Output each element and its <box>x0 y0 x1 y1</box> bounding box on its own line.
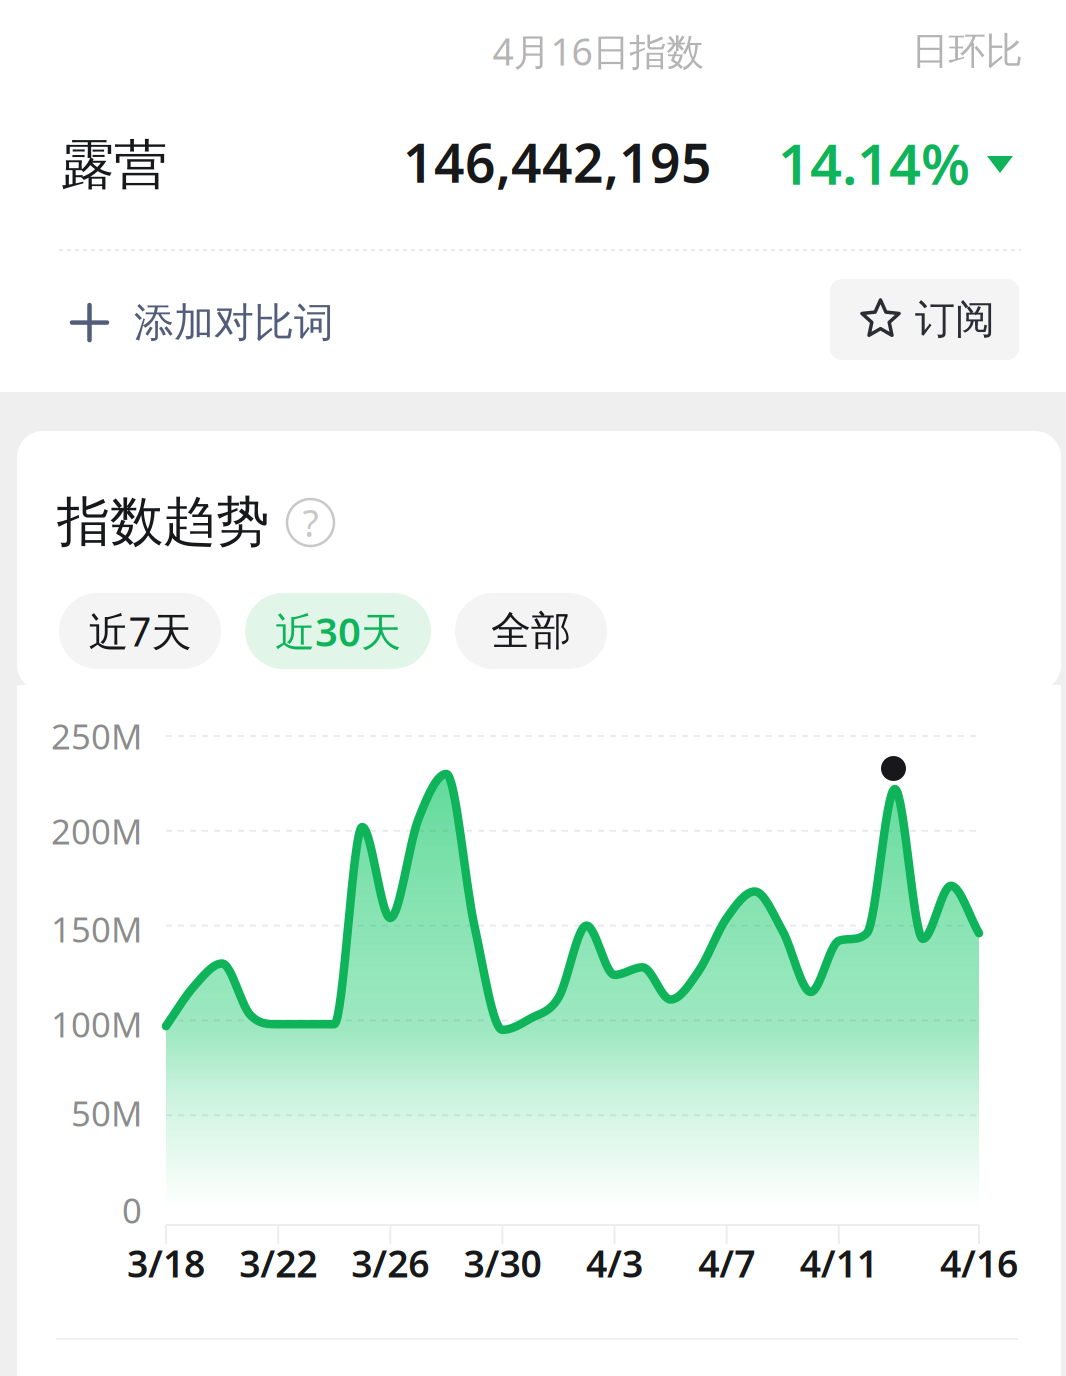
staticText: 4/3 <box>586 1238 643 1288</box>
staticText: 近7天 <box>88 604 191 657</box>
button[interactable]: Help <box>287 499 334 546</box>
button[interactable]: 全部 <box>455 593 607 669</box>
staticText: 100M <box>51 1001 142 1047</box>
button[interactable]: 近30天 <box>245 593 431 669</box>
staticText: 200M <box>51 808 142 854</box>
button[interactable]: 近7天 <box>59 593 221 669</box>
staticText: 添加对比词 <box>134 298 334 347</box>
staticText: 146,442,195 <box>403 127 712 197</box>
staticText: 250M <box>51 713 142 759</box>
button[interactable]: 订阅 <box>830 279 1019 360</box>
staticText: 3/30 <box>463 1238 541 1288</box>
staticText: 3/26 <box>351 1238 429 1288</box>
staticText: 50M <box>71 1090 142 1136</box>
staticText: 日环比 <box>911 28 1022 74</box>
staticText: 4/7 <box>698 1238 755 1288</box>
staticText: 14.14% <box>778 126 970 200</box>
staticText: 近30天 <box>275 604 401 657</box>
staticText: 订阅 <box>915 295 995 344</box>
staticText: 4/16 <box>940 1238 1018 1288</box>
staticText: 全部 <box>491 606 571 655</box>
staticText: 4月16日指数 <box>492 26 703 76</box>
button[interactable]: 添加对比词 <box>0 268 374 377</box>
staticText: ? <box>302 498 318 547</box>
staticText: 0 <box>122 1187 142 1233</box>
staticText: 3/22 <box>239 1238 317 1288</box>
staticText: 指数趋势 <box>57 489 269 555</box>
staticText: 4/11 <box>800 1238 878 1288</box>
staticText: 露营 <box>61 132 167 198</box>
staticText: 3/18 <box>127 1238 205 1288</box>
staticText: 150M <box>51 906 142 952</box>
